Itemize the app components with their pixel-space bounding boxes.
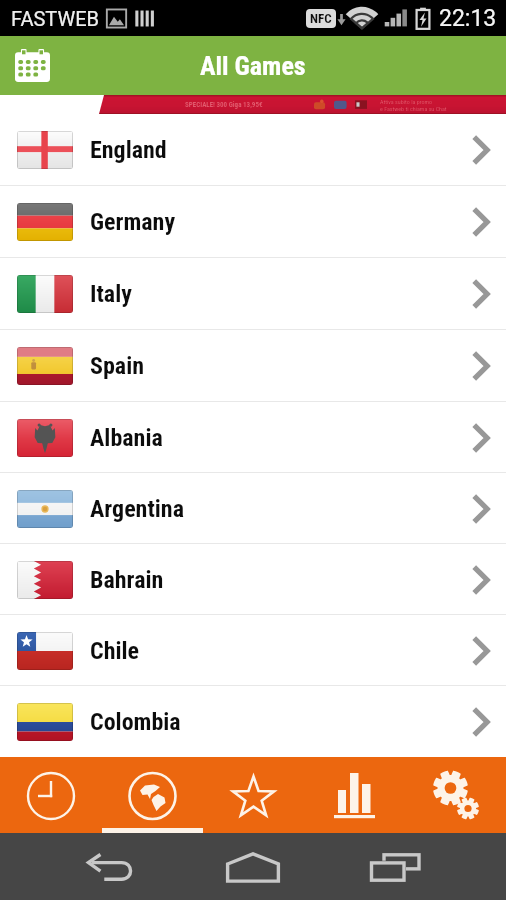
staticText: Attiva subito la promo <box>380 98 433 105</box>
staticText: FASTWEB <box>11 7 99 30</box>
button[interactable]: Advertisement <box>0 95 506 114</box>
button[interactable]: Statistics <box>304 757 405 833</box>
staticText: NFC <box>310 11 332 26</box>
button[interactable]: All Games <box>102 757 203 833</box>
button[interactable]: Schedule <box>0 757 102 833</box>
button[interactable]: Favourites <box>203 757 304 833</box>
button[interactable]: Italy <box>0 258 506 330</box>
button[interactable]: Albania <box>0 402 506 473</box>
staticText: Argentina <box>90 495 184 523</box>
staticText: 22:13 <box>439 5 497 32</box>
staticText: Colombia <box>90 708 181 736</box>
staticText: e Fastweb ti chiama su Chat <box>380 105 447 112</box>
staticText: England <box>90 136 167 164</box>
button[interactable]: Home <box>217 843 289 891</box>
button[interactable]: Germany <box>0 186 506 258</box>
staticText: SPECIALE! 300 Giga 13,95€ <box>185 101 263 109</box>
button[interactable]: Bahrain <box>0 544 506 615</box>
button[interactable]: Argentina <box>0 473 506 544</box>
button[interactable]: Colombia <box>0 686 506 757</box>
button[interactable]: Calendar <box>15 49 50 82</box>
button[interactable]: Chile <box>0 615 506 686</box>
staticText: Bahrain <box>90 566 164 594</box>
staticText: Germany <box>90 208 176 236</box>
button[interactable]: Spain <box>0 330 506 402</box>
staticText: Spain <box>90 352 144 380</box>
staticText: Chile <box>90 637 140 665</box>
button[interactable]: Back <box>75 843 147 891</box>
staticText: All Games <box>200 51 306 81</box>
button[interactable]: Recents <box>359 843 431 891</box>
button[interactable]: England <box>0 114 506 186</box>
staticText: Italy <box>90 280 132 308</box>
staticText: Albania <box>90 424 163 452</box>
button[interactable]: Settings <box>405 757 506 833</box>
